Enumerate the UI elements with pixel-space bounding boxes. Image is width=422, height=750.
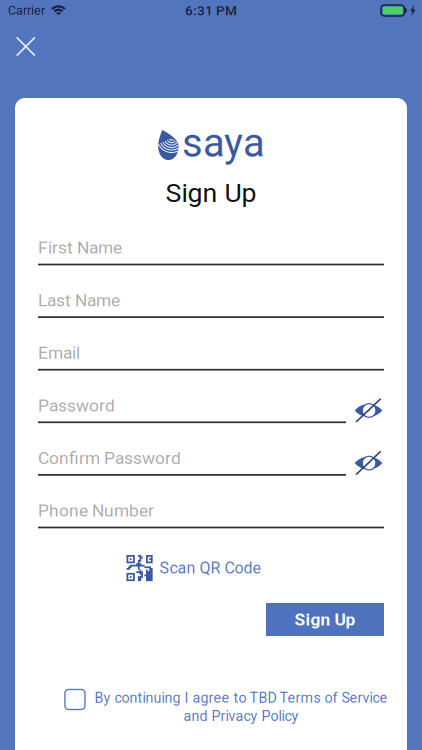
staticText: Confirm Password	[38, 448, 181, 468]
staticText: Password	[38, 395, 115, 416]
staticText: Carrier	[8, 3, 45, 18]
staticText: First Name	[38, 237, 122, 258]
staticText: Scan QR Code	[159, 559, 260, 577]
button[interactable]: Scan QR Code	[126, 555, 260, 581]
button[interactable]: Sign Up	[266, 603, 384, 636]
staticText: saya	[182, 120, 265, 166]
staticText: Email	[38, 343, 80, 363]
staticText: Sign Up	[294, 609, 355, 630]
staticText: 6:31 PM	[185, 2, 237, 18]
button[interactable]: Close	[7, 27, 45, 65]
staticText: and Privacy Policy	[183, 708, 298, 724]
button[interactable]: Show Confirm Password	[349, 445, 387, 481]
button[interactable]: Show Password	[349, 392, 387, 428]
staticText: By continuing I agree to TBD Terms of Se…	[94, 689, 387, 706]
staticText: Sign Up	[165, 177, 256, 209]
staticText: Last Name	[38, 290, 120, 310]
button[interactable]: By continuing I agree to TBD Terms of Se…	[65, 689, 387, 715]
staticText: Phone Number	[38, 500, 154, 521]
